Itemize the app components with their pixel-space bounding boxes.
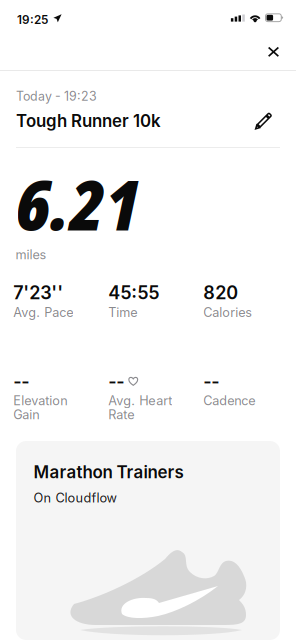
staticText: Avg. Heart: [108, 393, 172, 408]
staticText: Tough Runner 10k: [16, 111, 161, 131]
staticText: Calories: [203, 305, 252, 320]
staticText: 19:25: [17, 13, 48, 27]
staticText: Marathon Trainers: [33, 462, 183, 482]
staticText: --: [13, 370, 29, 392]
staticText: Rate: [108, 407, 134, 422]
staticText: Avg. Pace: [13, 305, 73, 320]
button[interactable]: Edit activity: [247, 103, 279, 139]
staticText: 7'23'': [13, 282, 63, 303]
staticText: --: [108, 370, 124, 392]
staticText: On Cloudflow: [33, 490, 116, 506]
staticText: Today - 19:23: [16, 89, 97, 104]
button[interactable]: Marathon Trainers: [16, 441, 280, 640]
staticText: Cadence: [203, 393, 255, 408]
button[interactable]: Close: [256, 47, 290, 70]
staticText: --: [203, 370, 219, 392]
staticText: Elevation: [13, 393, 67, 408]
staticText: 45:55: [108, 282, 159, 303]
staticText: miles: [15, 247, 46, 262]
staticText: 6.21: [15, 156, 139, 251]
staticText: Gain: [13, 407, 39, 422]
staticText: Time: [108, 305, 137, 320]
staticText: 820: [203, 282, 238, 303]
